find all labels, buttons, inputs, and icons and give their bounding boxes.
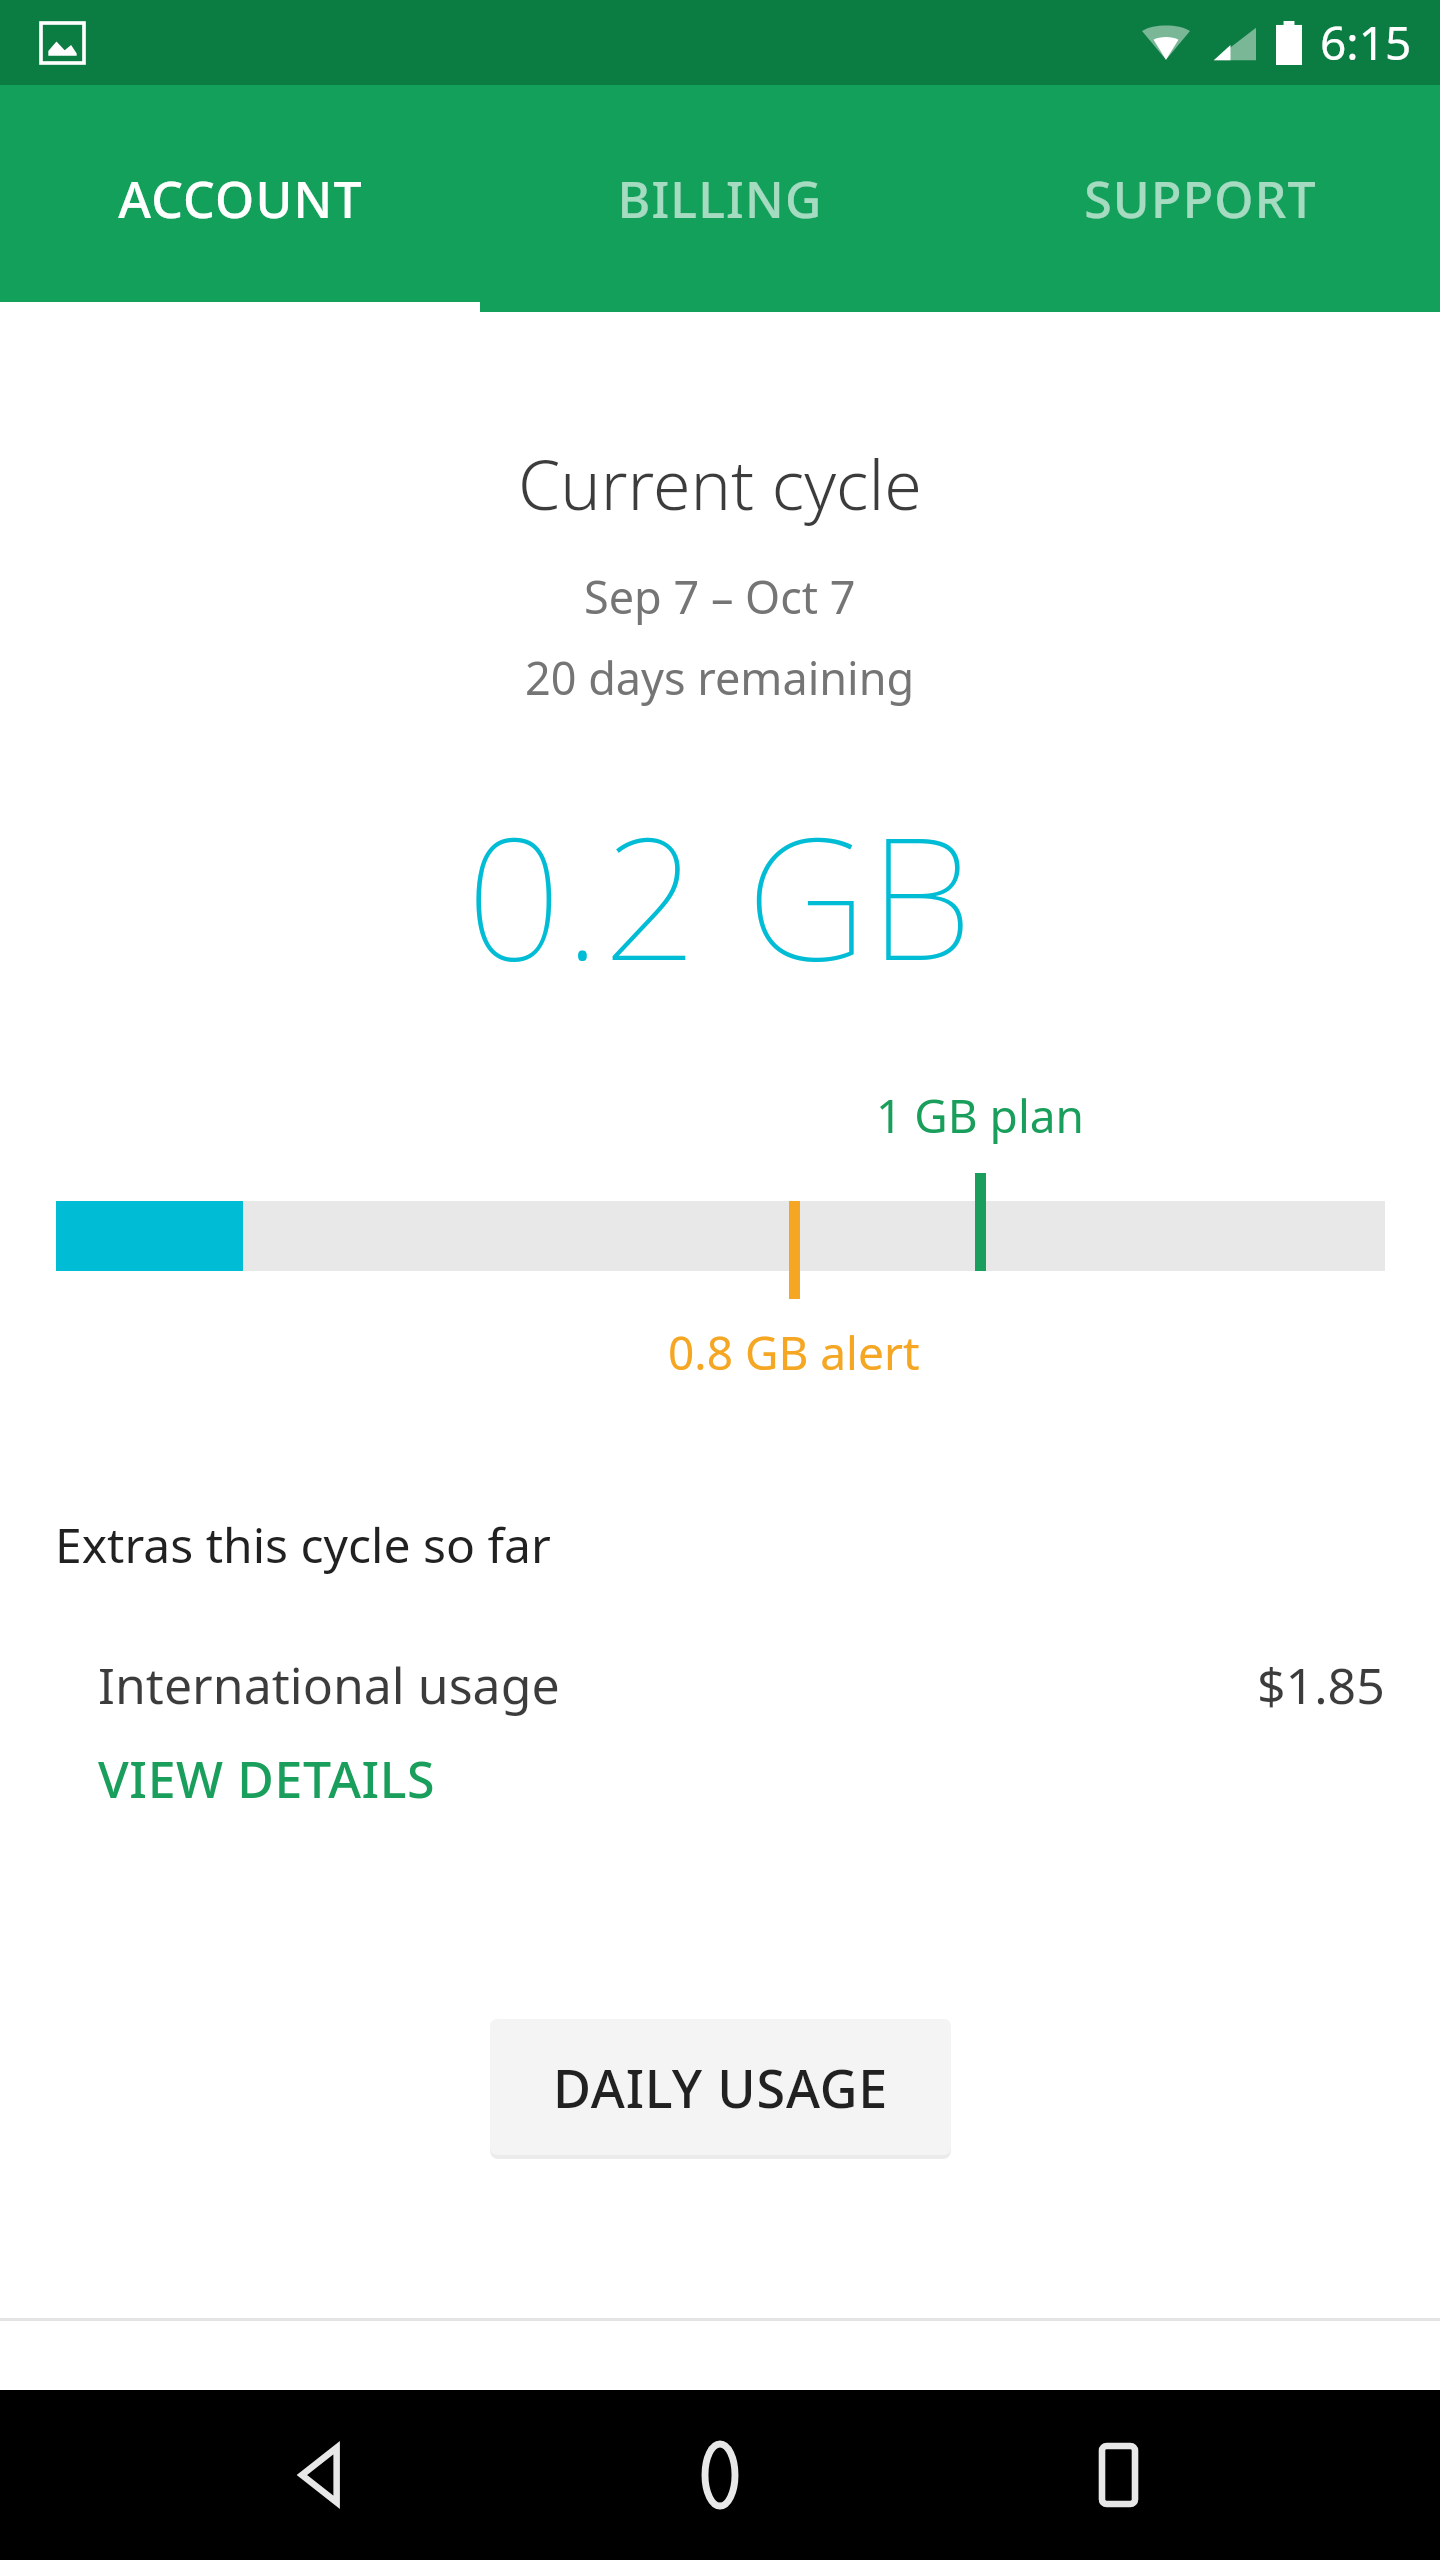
staticText: International usage [98, 1651, 560, 1719]
button[interactable]: BILLING [480, 85, 960, 312]
staticText: Extras this cycle so far [55, 1512, 551, 1577]
button[interactable]: SUPPORT [960, 85, 1440, 312]
staticText: 20 days remaining [525, 647, 915, 708]
button[interactable]: Home [645, 2400, 795, 2550]
button[interactable]: ACCOUNT [0, 85, 480, 312]
staticText: ACCOUNT [118, 165, 363, 233]
staticText: 0.2 GB [466, 780, 975, 1009]
staticText: 6:15 [1320, 11, 1412, 74]
button[interactable]: Back [248, 2400, 398, 2550]
staticText: SUPPORT [1084, 165, 1317, 233]
staticText: VIEW DETAILS [98, 1745, 436, 1813]
staticText: 1 GB plan [876, 1084, 1085, 1147]
staticText: BILLING [617, 165, 823, 233]
staticText: Current cycle [518, 437, 922, 530]
button[interactable]: VIEW DETAILS [98, 1745, 436, 1813]
staticText: $1.85 [1257, 1651, 1385, 1719]
staticText: Sep 7 – Oct 7 [584, 566, 856, 627]
staticText: 0.8 GB alert [668, 1321, 920, 1384]
staticText: DAILY USAGE [553, 2052, 889, 2123]
button[interactable]: DAILY USAGE [490, 2019, 951, 2155]
button[interactable]: Recent apps [1043, 2400, 1193, 2550]
